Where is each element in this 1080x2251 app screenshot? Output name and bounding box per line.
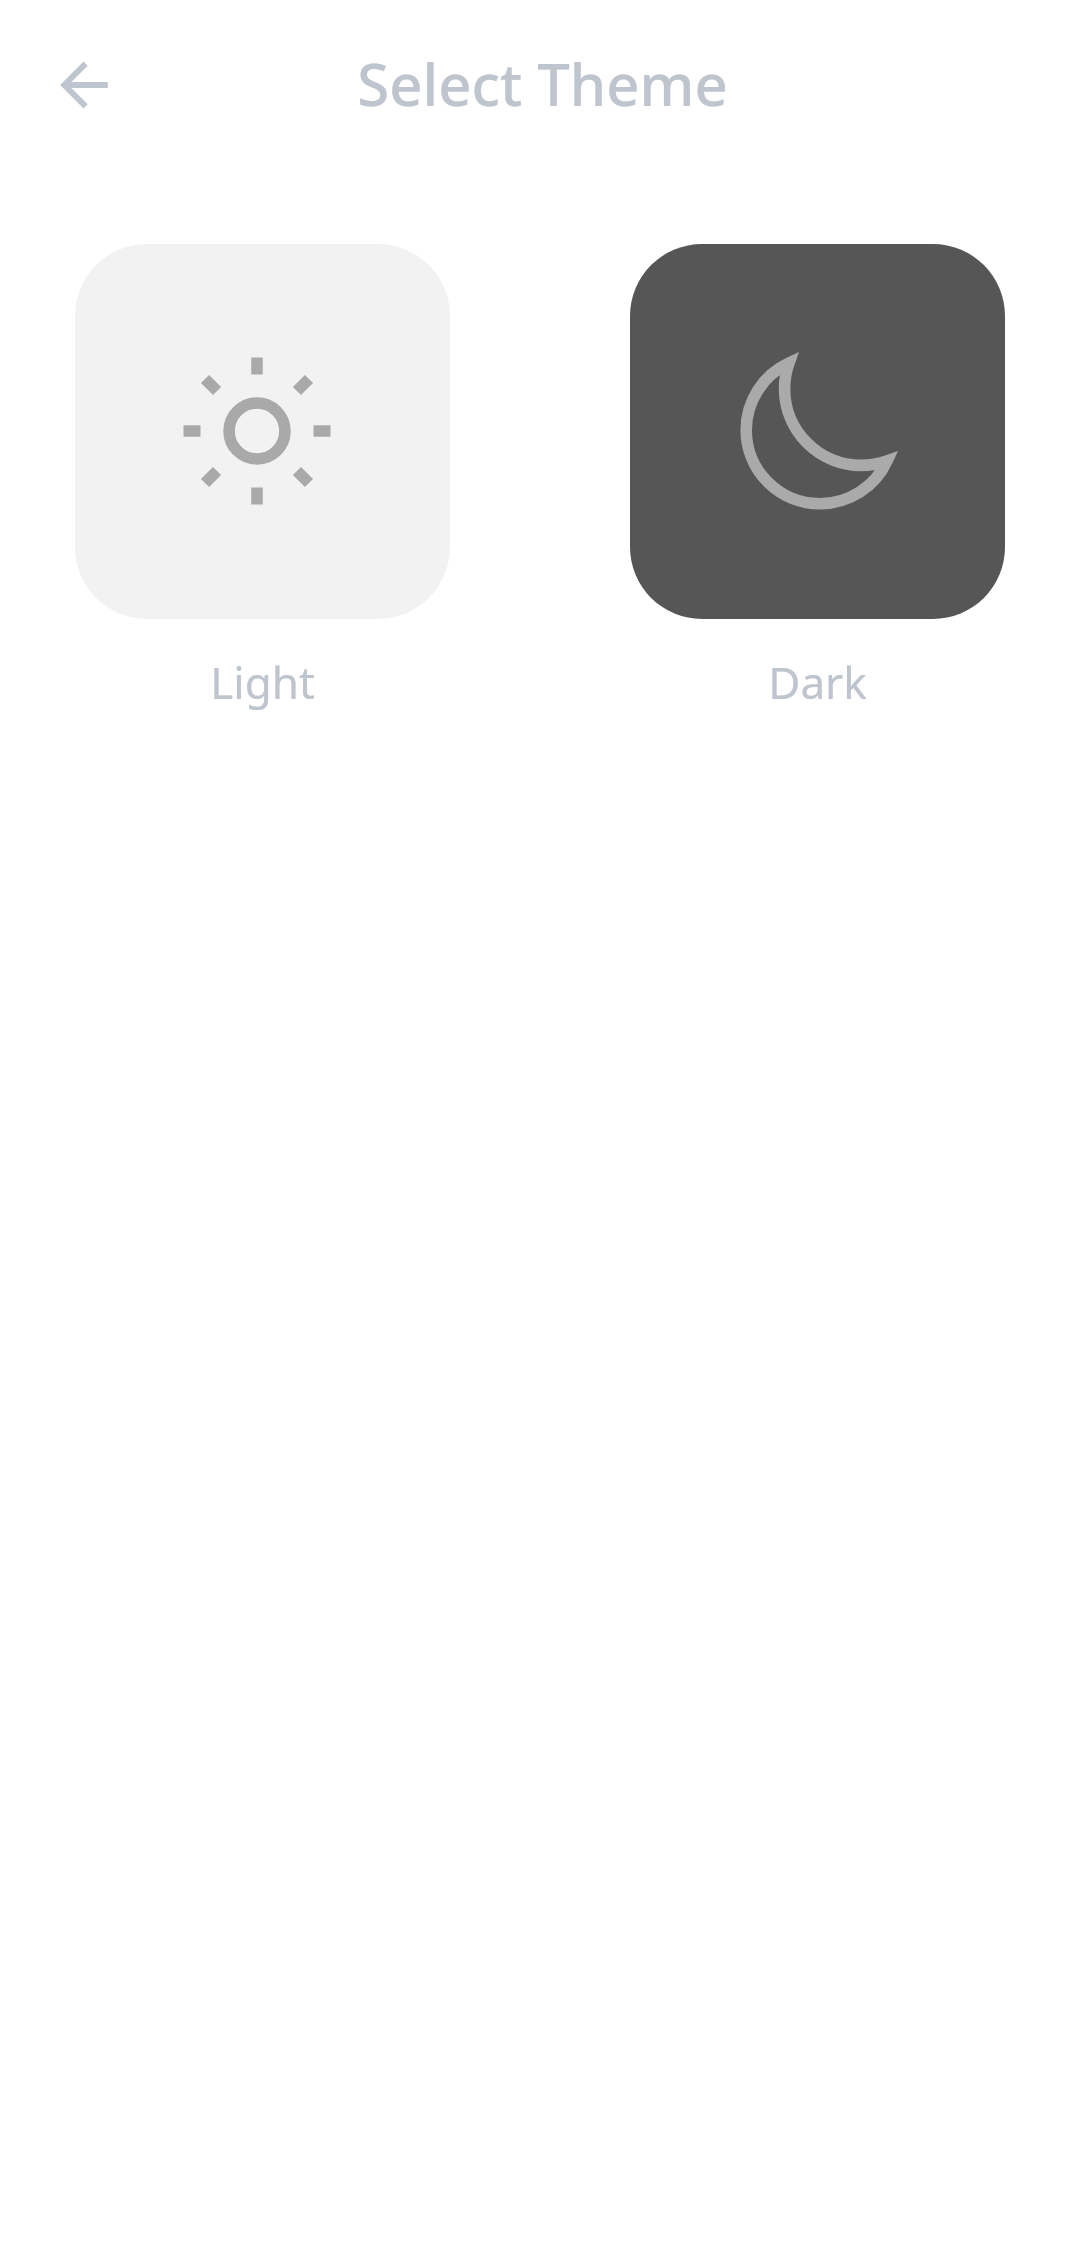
staticText: Light xyxy=(210,652,315,712)
button[interactable]: Light xyxy=(75,244,450,712)
staticText: Select Theme xyxy=(357,44,728,123)
button[interactable]: Dark xyxy=(630,244,1005,712)
staticText: Dark xyxy=(768,652,867,712)
button[interactable]: Back xyxy=(41,41,129,129)
